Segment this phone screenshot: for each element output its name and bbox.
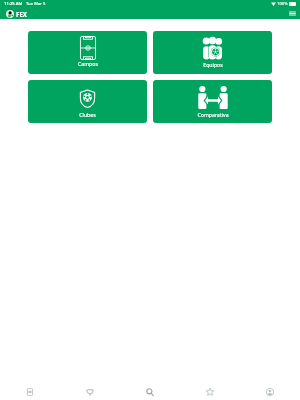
staticText: Clubes [79, 111, 96, 118]
button[interactable]: Comparativa [153, 80, 272, 123]
button[interactable]: Menu [289, 10, 296, 17]
staticText: Tue Mar 5 [26, 1, 46, 7]
staticText: Comparativa [197, 111, 229, 118]
button[interactable]: Trophies [60, 380, 120, 400]
button[interactable]: Profile [240, 380, 300, 400]
staticText: 100% [277, 1, 288, 7]
staticText: Equipos [203, 61, 223, 68]
staticText: FEX [16, 10, 28, 18]
button[interactable]: Campos [28, 31, 147, 74]
staticText: Campos [78, 60, 98, 67]
button[interactable]: Favorites [180, 380, 240, 400]
button[interactable]: Clubes [28, 80, 147, 123]
button[interactable]: Fields [0, 380, 60, 400]
button[interactable]: Equipos [153, 31, 272, 74]
staticText: 11:25 AM [4, 1, 23, 7]
button[interactable]: Search [120, 380, 180, 400]
